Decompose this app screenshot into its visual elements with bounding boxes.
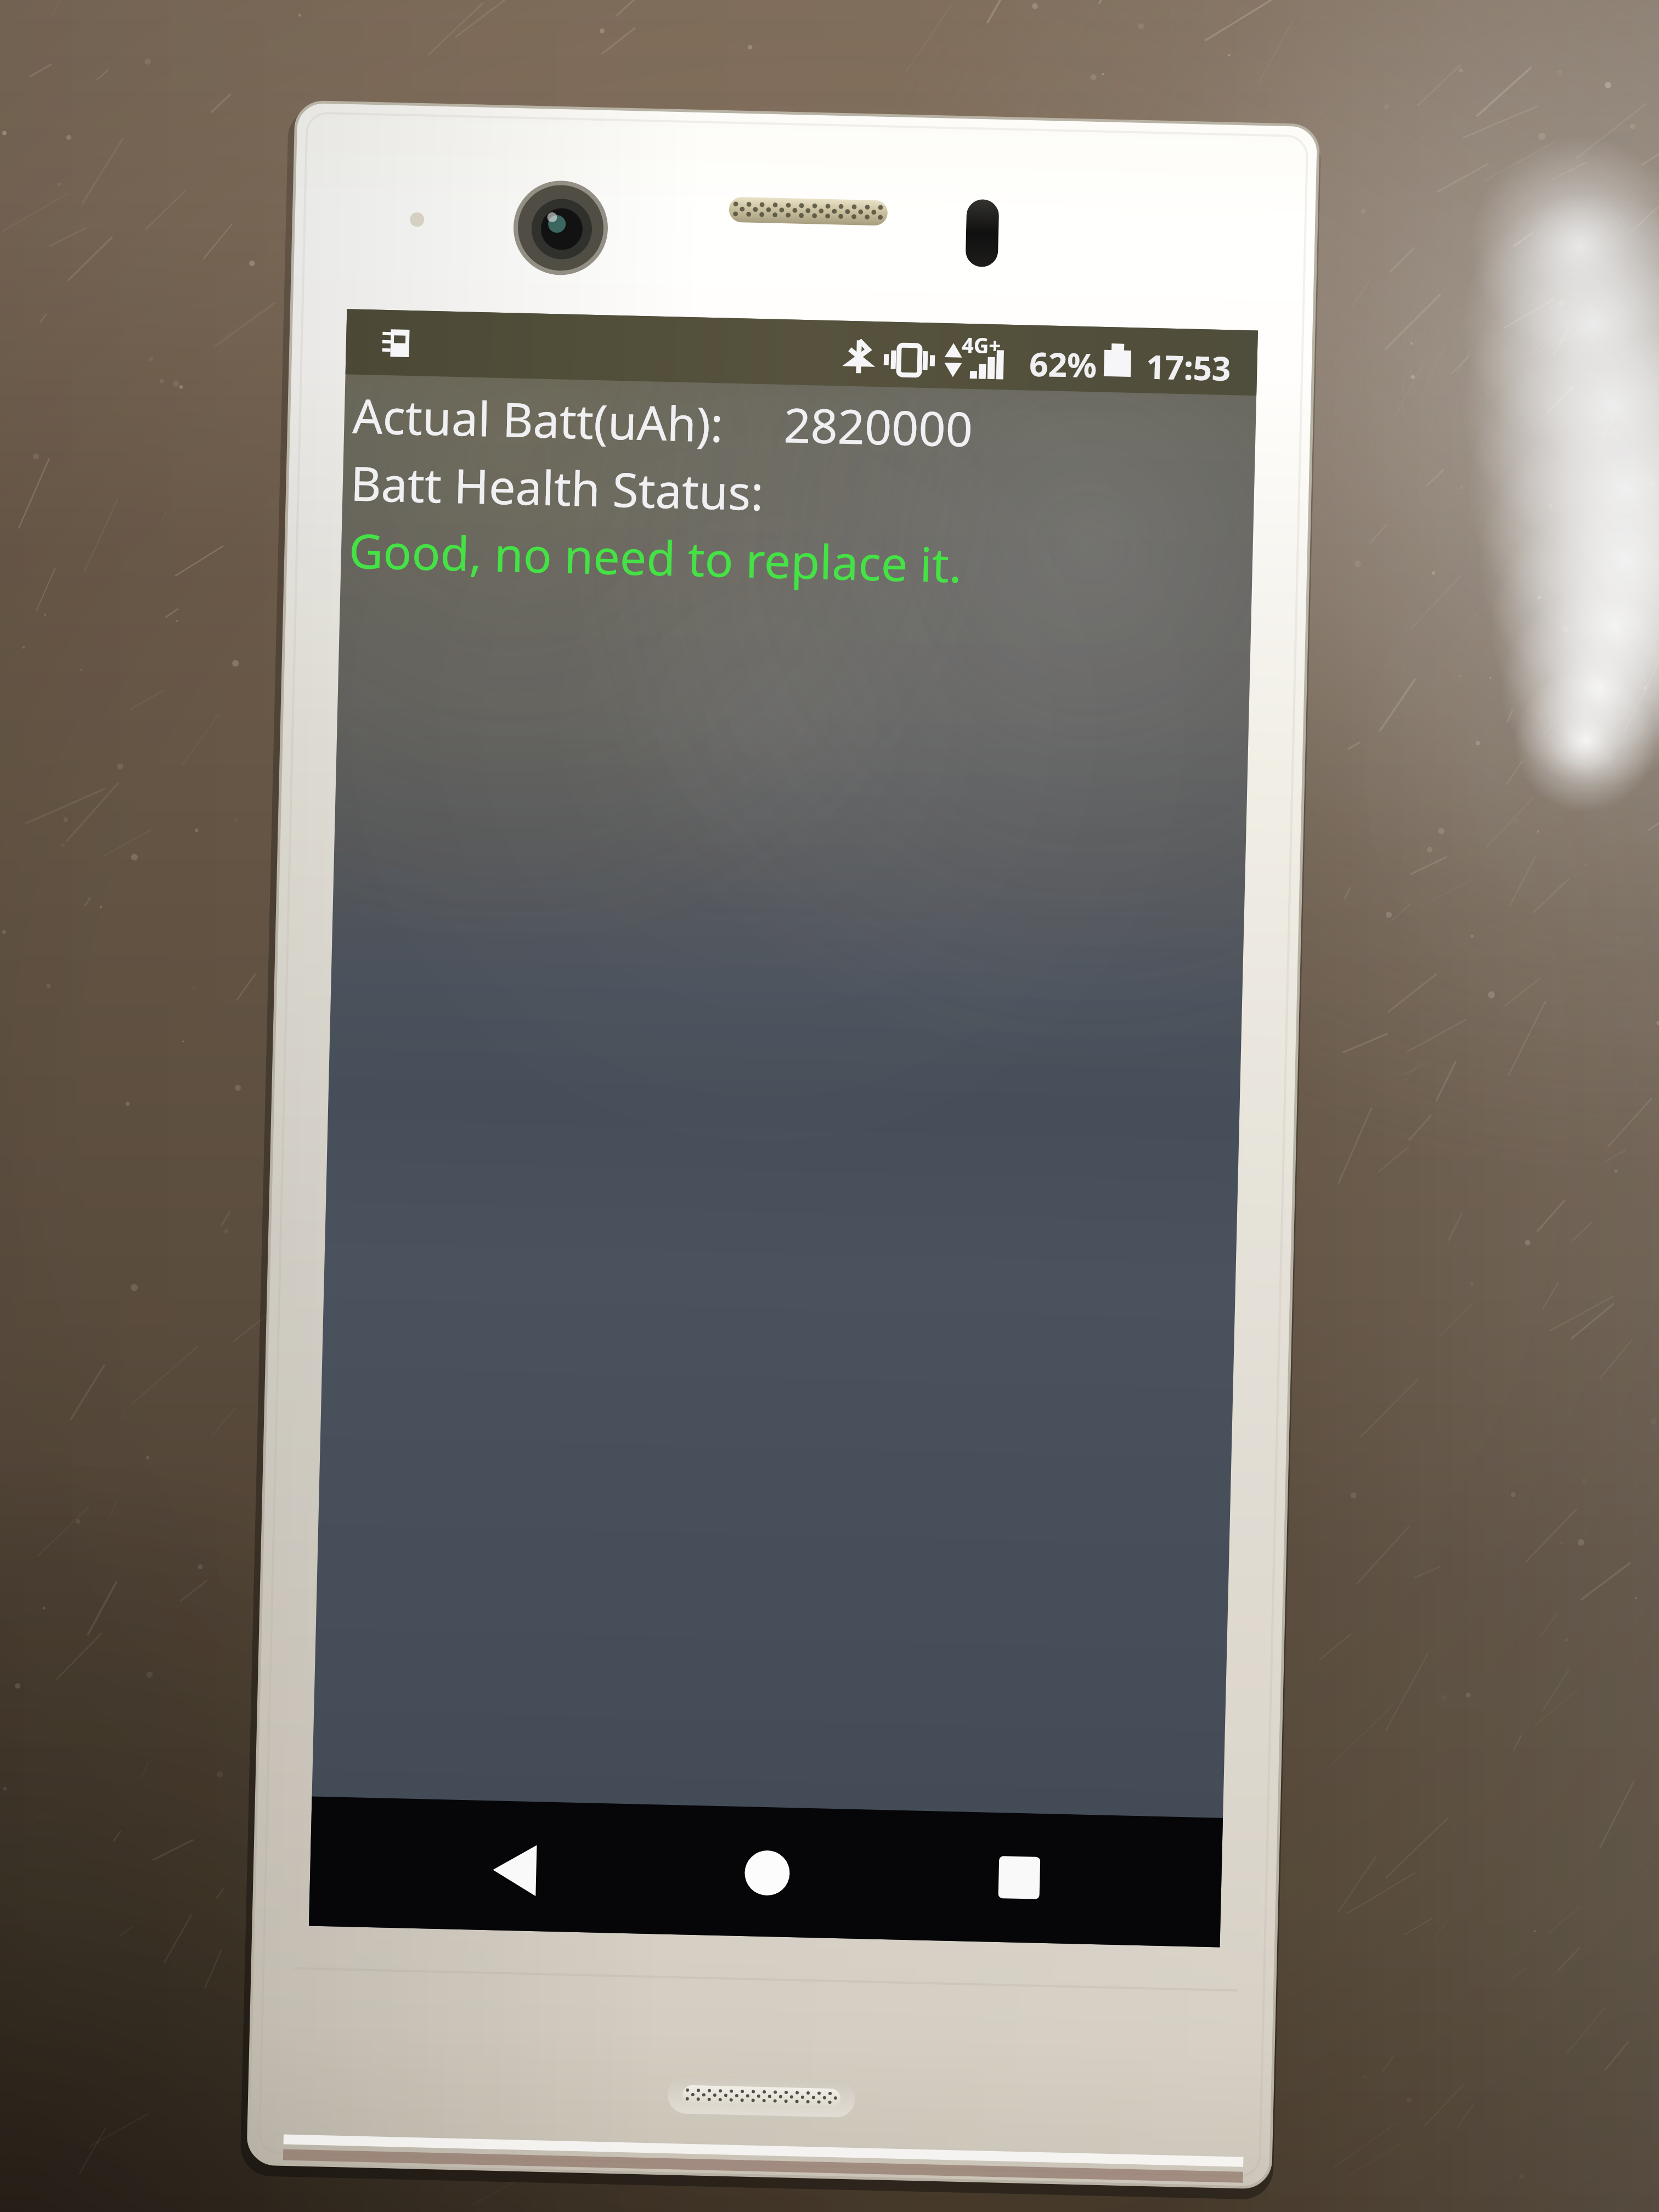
button[interactable]: Battery status readout <box>315 309 1228 509</box>
button[interactable]: Home <box>720 1818 844 1917</box>
button[interactable]: Back <box>498 1818 622 1917</box>
button[interactable]: Status bar <box>995 328 1244 390</box>
button[interactable]: Recent apps <box>959 1818 1084 1917</box>
